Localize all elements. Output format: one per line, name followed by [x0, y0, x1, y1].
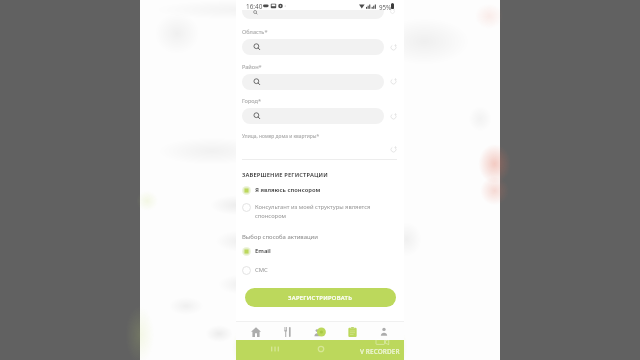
button[interactable]: СМС — [242, 266, 397, 275]
button[interactable] — [242, 39, 384, 55]
button[interactable]: Home — [317, 345, 325, 353]
button[interactable]: Recents — [271, 345, 279, 353]
staticText: Я являюсь спонсором — [255, 186, 355, 194]
staticText: СМС — [255, 266, 315, 274]
button[interactable]: Menu — [276, 322, 300, 341]
button[interactable]: Я являюсь спонсором — [242, 186, 397, 195]
staticText: ЗАРЕГИСТРИРОВАТЬ — [288, 294, 353, 302]
staticText: ЗАВЕРШЕНИЕ РЕГИСТРАЦИИ — [242, 171, 328, 179]
button[interactable]: Home — [244, 322, 268, 341]
staticText: Консультант из моей структуры является с… — [255, 203, 372, 220]
button[interactable]: ЗАРЕГИСТРИРОВАТЬ — [245, 288, 396, 307]
button[interactable] — [242, 108, 384, 124]
staticText: Город* — [242, 97, 262, 105]
button[interactable]: Консультант из моей структуры является с… — [242, 203, 397, 220]
staticText: Район* — [242, 63, 262, 71]
staticText: Выбор способа активации — [242, 233, 318, 241]
button[interactable]: Refresh street — [389, 145, 398, 154]
button[interactable]: Email — [242, 247, 397, 256]
staticText: Email — [255, 247, 315, 255]
button[interactable]: Contacts — [308, 322, 332, 341]
staticText: V RECORDER — [360, 347, 400, 356]
staticText: Улица, номер дома и квартиры* — [242, 133, 320, 140]
button[interactable]: Orders — [340, 322, 364, 341]
button[interactable]: Refresh Район* — [389, 77, 398, 86]
button[interactable]: Profile — [372, 322, 396, 341]
staticText: 95% — [379, 3, 392, 11]
staticText: 16:40 — [246, 2, 263, 11]
button[interactable]: Refresh Область* — [389, 43, 398, 52]
button[interactable]: Refresh Город* — [389, 112, 398, 121]
staticText: Область* — [242, 28, 268, 36]
button[interactable] — [242, 74, 384, 90]
